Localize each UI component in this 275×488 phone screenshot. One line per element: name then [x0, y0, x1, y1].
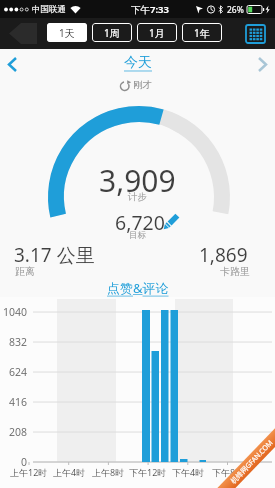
staticText: 1,869 — [199, 242, 248, 268]
staticText: 26% — [227, 4, 244, 16]
staticText: 624 — [9, 365, 28, 379]
button[interactable]: 今天 — [124, 54, 152, 72]
button[interactable]: 1月 — [137, 23, 177, 42]
button[interactable]: 6,720 — [115, 209, 165, 236]
staticText: 中国联通 — [32, 4, 66, 15]
staticText: 1040 — [3, 305, 28, 319]
staticText: 1年 — [194, 26, 210, 40]
staticText: 0 — [21, 455, 28, 469]
staticText: 目标 — [129, 230, 146, 241]
staticText: 上午4时 — [53, 466, 86, 478]
staticText: 上午8时 — [92, 466, 125, 478]
staticText: 1天 — [59, 26, 75, 40]
button[interactable]: 1年 — [182, 23, 222, 42]
staticText: 1周 — [104, 26, 120, 40]
staticText: 计步 — [128, 191, 147, 203]
staticText: 卡路里 — [220, 265, 250, 278]
staticText: 3.17 公里 — [14, 242, 95, 268]
button[interactable]: 1天 — [47, 23, 87, 42]
staticText: 机锋网GFAN.COM — [229, 437, 275, 486]
button[interactable]: 点赞&评论 — [107, 279, 169, 297]
staticText: 下午12时 — [129, 466, 167, 478]
button[interactable]: 1周 — [92, 23, 132, 42]
staticText: 832 — [9, 335, 28, 349]
staticText: 刚才 — [133, 79, 152, 91]
staticText: 下午7:33 — [131, 3, 169, 16]
staticText: 下午4时 — [172, 466, 205, 478]
staticText: 208 — [9, 425, 28, 439]
staticText: 416 — [9, 395, 28, 409]
staticText: 3,909 — [99, 160, 176, 201]
staticText: 1月 — [149, 26, 165, 40]
staticText: 下午8时 — [212, 466, 245, 478]
staticText: 上午12时 — [10, 466, 48, 478]
staticText: 距离 — [15, 265, 35, 278]
